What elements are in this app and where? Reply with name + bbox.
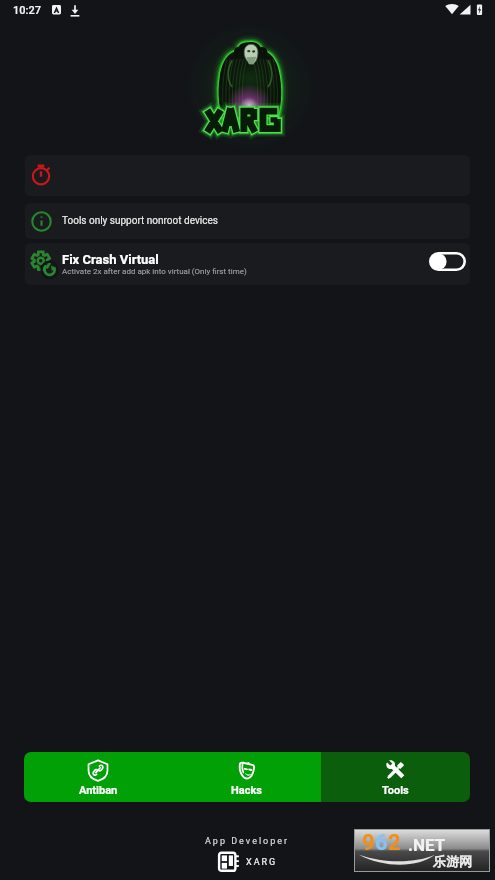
staticText: Activate 2x after add apk into virtual (… (62, 267, 247, 276)
staticText: 9 (362, 830, 375, 856)
staticText: 2 (388, 830, 401, 856)
button[interactable]: Toggle Fix Crash Virtual (427, 249, 468, 274)
button[interactable]: Developer XARG (218, 851, 278, 873)
button[interactable]: Tools (321, 752, 470, 802)
staticText: XARG (246, 857, 278, 868)
staticText: Antiban (79, 784, 118, 797)
staticText: 6 (375, 830, 388, 856)
staticText: App Developer (205, 836, 290, 847)
button[interactable]: Timer (25, 155, 470, 196)
staticText: Hacks (231, 784, 262, 797)
button[interactable]: Antiban (24, 752, 172, 802)
button[interactable]: Tools only support nonroot devices (25, 203, 470, 239)
button[interactable]: Fix Crash Virtual (25, 243, 470, 285)
staticText: Fix Crash Virtual (62, 252, 159, 267)
staticText: 10:27 (13, 4, 41, 17)
button[interactable]: Hacks (172, 752, 321, 802)
staticText: Tools only support nonroot devices (62, 215, 218, 227)
staticText: .NET (408, 835, 446, 855)
staticText: Tools (382, 784, 409, 797)
staticText: 乐游网 (433, 853, 472, 869)
